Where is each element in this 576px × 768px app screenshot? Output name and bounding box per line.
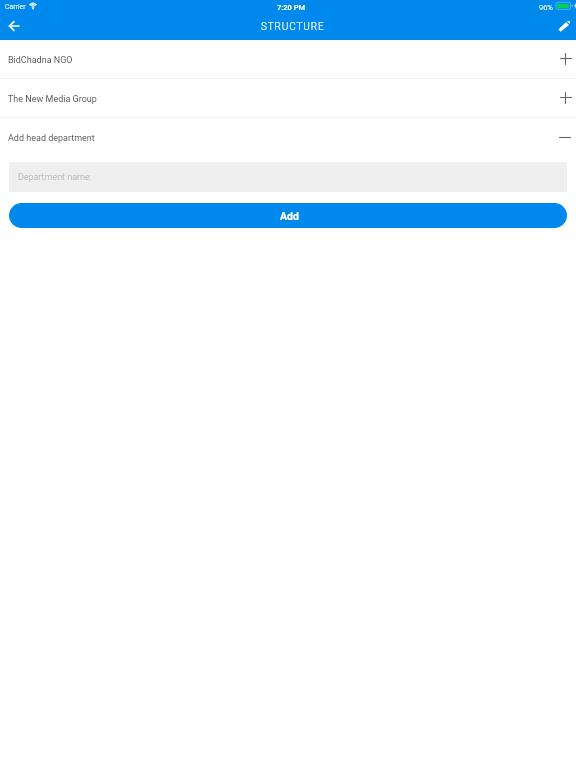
staticText: Carrier bbox=[5, 3, 26, 11]
button[interactable]: Add department bbox=[556, 79, 576, 117]
button[interactable]: Add department bbox=[556, 40, 576, 78]
button[interactable]: Collapse bbox=[556, 118, 576, 156]
button[interactable]: Add head department bbox=[0, 118, 576, 156]
button[interactable]: BidChadna NGO bbox=[0, 40, 576, 78]
staticText: Department name: bbox=[18, 172, 92, 183]
button[interactable]: Add bbox=[9, 203, 567, 228]
staticText: 7:20 PM bbox=[277, 3, 306, 12]
staticText: 96% bbox=[539, 3, 553, 12]
button[interactable]: The New Media Group bbox=[0, 79, 576, 117]
staticText: The New Media Group bbox=[8, 94, 97, 105]
button[interactable]: Back bbox=[0, 12, 28, 40]
button[interactable]: Department name: bbox=[9, 162, 567, 192]
staticText: Add bbox=[280, 210, 299, 222]
staticText: STRUCTURE bbox=[261, 21, 325, 33]
staticText: BidChadna NGO bbox=[8, 55, 73, 66]
staticText: Add head department bbox=[8, 133, 95, 144]
button[interactable]: Edit bbox=[551, 12, 576, 40]
